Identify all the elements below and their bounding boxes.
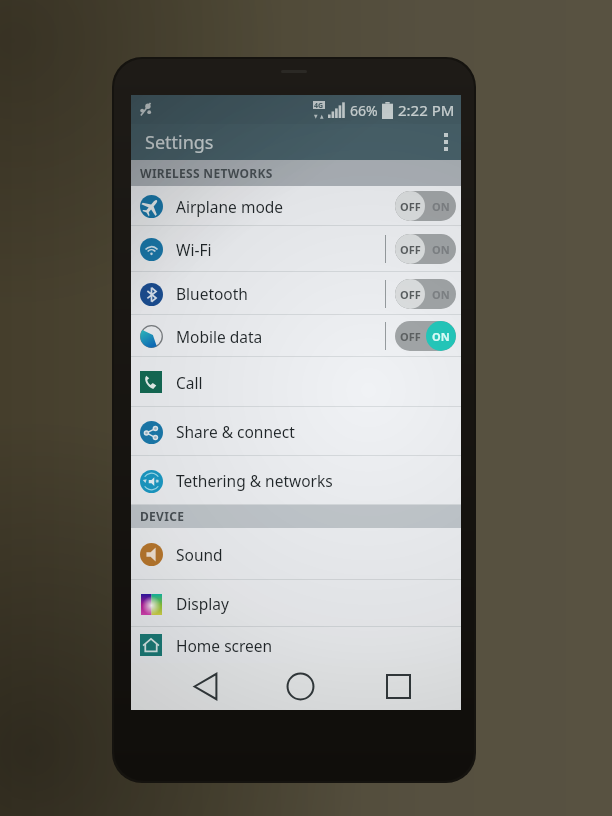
staticText: Home screen bbox=[176, 635, 273, 656]
staticText: 66% bbox=[350, 101, 378, 120]
staticText: OFF bbox=[400, 329, 421, 344]
button[interactable]: OFF bbox=[395, 279, 456, 309]
staticText: WIRELESS NETWORKS bbox=[140, 165, 273, 181]
button[interactable]: Home screen bbox=[131, 627, 461, 663]
button[interactable]: Airplane mode bbox=[131, 186, 461, 226]
staticText: Display bbox=[176, 593, 229, 614]
staticText: Mobile data bbox=[176, 326, 263, 347]
staticText: OFF bbox=[400, 242, 421, 257]
button[interactable]: Mobile data bbox=[131, 315, 461, 357]
staticText: DEVICE bbox=[140, 508, 185, 524]
button[interactable]: More options bbox=[431, 124, 461, 160]
button[interactable]: Display bbox=[131, 580, 461, 627]
staticText: Sound bbox=[176, 544, 223, 565]
button[interactable]: Wi-Fi bbox=[131, 226, 461, 272]
button[interactable]: OFF bbox=[395, 234, 456, 264]
button[interactable]: Call bbox=[131, 357, 461, 407]
button[interactable]: Sound bbox=[131, 528, 461, 580]
staticText: OFF bbox=[400, 287, 421, 302]
staticText: ON bbox=[432, 242, 450, 257]
staticText: Tethering & networks bbox=[176, 470, 333, 491]
staticText: 4G bbox=[314, 101, 324, 109]
button[interactable]: Back bbox=[177, 663, 234, 710]
staticText: ON bbox=[432, 329, 450, 344]
staticText: Bluetooth bbox=[176, 283, 248, 304]
button[interactable]: Bluetooth bbox=[131, 272, 461, 315]
button[interactable]: OFF bbox=[395, 321, 456, 351]
staticText: OFF bbox=[400, 199, 421, 214]
button[interactable]: Share & connect bbox=[131, 407, 461, 456]
staticText: OFF bbox=[400, 287, 421, 302]
staticText: ON bbox=[432, 287, 450, 302]
staticText: Share & connect bbox=[176, 421, 295, 442]
staticText: Settings bbox=[145, 130, 214, 155]
staticText: 2:22 PM bbox=[398, 100, 455, 120]
button[interactable]: Tethering & networks bbox=[131, 456, 461, 505]
staticText: Wi-Fi bbox=[176, 239, 212, 260]
staticText: ON bbox=[432, 329, 450, 344]
staticText: Call bbox=[176, 372, 203, 393]
staticText: OFF bbox=[400, 199, 421, 214]
button[interactable]: OFF bbox=[395, 191, 456, 221]
staticText: ON bbox=[432, 199, 450, 214]
button[interactable]: Recent apps bbox=[369, 663, 427, 710]
staticText: OFF bbox=[400, 242, 421, 257]
button[interactable]: Home bbox=[271, 663, 329, 710]
staticText: Airplane mode bbox=[176, 196, 284, 217]
